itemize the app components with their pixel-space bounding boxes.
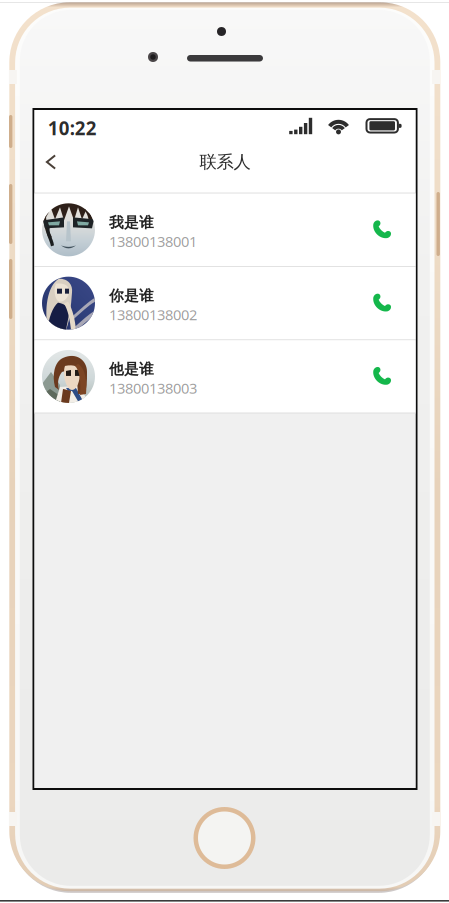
staticText: 联系人: [199, 151, 250, 173]
button[interactable]: Back: [34, 144, 67, 180]
staticText: 你是谁: [109, 287, 154, 305]
staticText: 13800138002: [109, 305, 197, 324]
staticText: 13800138001: [109, 232, 197, 251]
button[interactable]: 我是谁: [34, 194, 415, 266]
button[interactable]: Call 你是谁: [359, 275, 403, 331]
staticText: 他是谁: [109, 360, 154, 378]
staticText: 我是谁: [109, 214, 154, 232]
button[interactable]: Call 我是谁: [359, 202, 403, 258]
staticText: 13800138003: [109, 378, 197, 398]
button[interactable]: 他是谁: [34, 340, 415, 413]
button[interactable]: Call 他是谁: [359, 348, 403, 404]
button[interactable]: 你是谁: [34, 267, 415, 339]
staticText: 10:22: [48, 116, 97, 140]
